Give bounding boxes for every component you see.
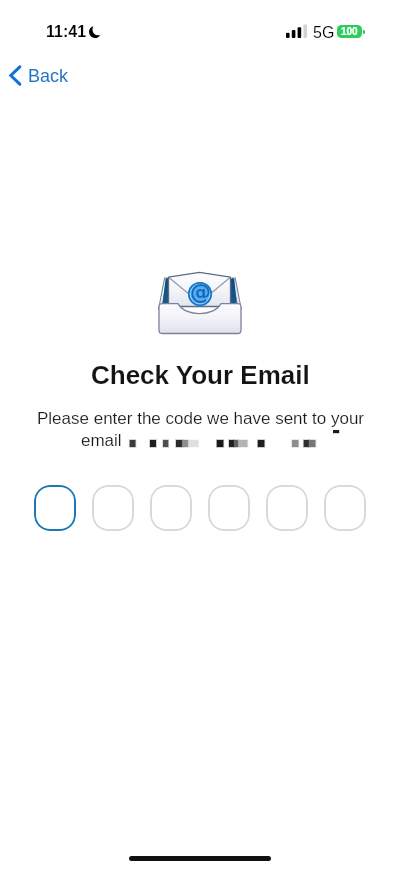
staticText: email [81,431,122,450]
button[interactable]: Code digit 2 [92,485,134,531]
staticText: Check Your Email [91,360,310,389]
staticText: Please enter the code we have sent to yo… [37,409,364,428]
button[interactable]: Code digit 3 [150,485,192,531]
button[interactable]: Code digit 1 [34,485,76,531]
staticText: 11:41 [46,23,87,41]
button[interactable]: Code digit 6 [324,485,366,531]
button[interactable]: Code digit 5 [266,485,308,531]
staticText: @ [190,280,211,304]
staticText: Back [28,66,69,86]
button[interactable]: Back [5,61,73,90]
staticText: 5G [313,24,335,42]
button[interactable]: Code digit 4 [208,485,250,531]
staticText: 100 [341,26,358,37]
